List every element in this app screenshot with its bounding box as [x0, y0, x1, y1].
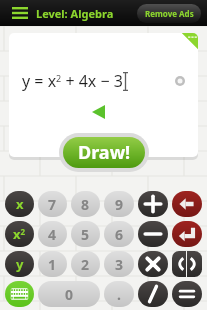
button[interactable]: Draw! [63, 137, 145, 168]
button[interactable]: y [5, 251, 34, 277]
button[interactable]: Open parenthesis [172, 251, 186, 277]
staticText: 6 [115, 225, 124, 244]
staticText: x2 [13, 225, 26, 243]
staticText: 7 [48, 195, 57, 214]
button[interactable]: y = x2 + 4x − 3 [9, 33, 198, 157]
staticText: x [16, 195, 24, 213]
button[interactable]: Clear [172, 73, 188, 89]
button[interactable]: 5 [71, 221, 100, 247]
button[interactable]: 7 [38, 191, 67, 217]
button[interactable]: Equals [172, 281, 202, 307]
button[interactable]: x2 [5, 221, 34, 247]
button[interactable]: 8 [71, 191, 100, 217]
button[interactable]: Minus [138, 221, 168, 247]
button[interactable]: Backspace [172, 191, 202, 217]
button[interactable]: 2 [71, 251, 100, 277]
staticText: . [117, 285, 121, 304]
button[interactable]: 3 [104, 251, 134, 277]
staticText: 4 [48, 225, 57, 244]
staticText: Draw! [78, 140, 131, 165]
staticText: 1 [48, 255, 57, 274]
staticText: 9 [115, 195, 124, 214]
button[interactable]: x [5, 191, 34, 217]
staticText: Remove Ads [145, 8, 194, 19]
staticText: 8 [81, 195, 90, 214]
button[interactable]: 6 [104, 221, 134, 247]
button[interactable]: . [104, 281, 134, 307]
button[interactable]: 4 [38, 221, 67, 247]
staticText: y = x2 + 4x − 3 [22, 70, 123, 92]
staticText: 0 [65, 285, 74, 304]
staticText: y [16, 255, 24, 273]
staticText: 5 [81, 225, 90, 244]
button[interactable]: Enter [172, 221, 202, 247]
button[interactable]: Plus [138, 191, 168, 217]
button[interactable]: Menu [9, 2, 31, 24]
button[interactable]: Close parenthesis [187, 251, 202, 277]
staticText: Level: Algebra [36, 6, 114, 21]
button[interactable]: Divide [138, 281, 168, 307]
button[interactable]: 1 [38, 251, 67, 277]
button[interactable]: Keyboard [5, 281, 34, 307]
button[interactable]: 0 [38, 281, 100, 307]
staticText: 2 [81, 255, 90, 274]
button[interactable]: 9 [104, 191, 134, 217]
button[interactable]: Multiply [138, 251, 168, 277]
staticText: 3 [115, 255, 124, 274]
button[interactable]: Remove Ads [137, 4, 201, 23]
